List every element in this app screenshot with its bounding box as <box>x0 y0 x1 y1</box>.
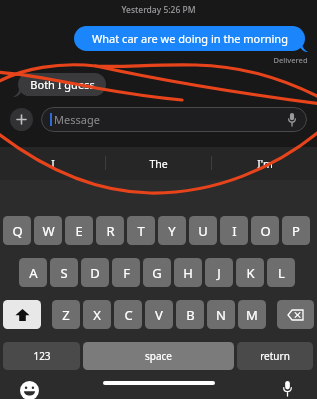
staticText: I <box>232 222 237 240</box>
staticText: Yesterday 5:26 PM <box>121 4 196 16</box>
staticText: I'm <box>257 157 273 171</box>
button[interactable]: V <box>145 300 173 329</box>
staticText: N <box>216 306 226 324</box>
button[interactable]: H <box>174 258 202 287</box>
button[interactable]: Emoji <box>19 380 40 399</box>
staticText: S <box>60 264 68 282</box>
staticText: The <box>149 157 168 171</box>
staticText: T <box>137 222 145 240</box>
button[interactable]: O <box>251 216 279 245</box>
button[interactable]: G <box>143 258 171 287</box>
staticText: Message <box>54 112 100 127</box>
button[interactable]: D <box>81 258 109 287</box>
button[interactable]: M <box>238 300 266 329</box>
button[interactable]: R <box>96 216 124 245</box>
staticText: 123 <box>33 349 51 363</box>
button[interactable]: What car are we doing in the morning <box>74 26 305 51</box>
staticText: L <box>278 264 285 282</box>
button[interactable]: Dictation <box>277 378 298 399</box>
button[interactable]: Q <box>3 216 31 245</box>
staticText: K <box>246 264 255 282</box>
button[interactable]: return <box>237 342 313 370</box>
staticText: B <box>186 306 195 324</box>
staticText: R <box>106 222 115 240</box>
button[interactable]: I <box>220 216 248 245</box>
button[interactable]: J <box>205 258 233 287</box>
button[interactable]: I <box>0 147 105 180</box>
staticText: X <box>93 306 101 324</box>
staticText: E <box>75 222 83 240</box>
staticText: D <box>90 264 100 282</box>
button[interactable]: Z <box>52 300 80 329</box>
staticText: C <box>124 306 133 324</box>
staticText: Z <box>62 306 70 324</box>
button[interactable]: B <box>176 300 204 329</box>
button[interactable]: Y <box>158 216 186 245</box>
staticText: U <box>198 222 208 240</box>
staticText: H <box>183 264 193 282</box>
button[interactable]: L <box>267 258 295 287</box>
button[interactable]: I'm <box>212 147 317 180</box>
staticText: P <box>292 222 300 240</box>
button[interactable]: Both I guess <box>18 73 106 96</box>
button[interactable]: C <box>114 300 142 329</box>
button[interactable]: U <box>189 216 217 245</box>
staticText: A <box>29 264 38 282</box>
button[interactable]: S <box>50 258 78 287</box>
staticText: G <box>152 264 162 282</box>
staticText: J <box>217 264 221 282</box>
button[interactable]: Dictate <box>283 111 300 128</box>
button[interactable]: N <box>207 300 235 329</box>
button[interactable]: E <box>65 216 93 245</box>
staticText: F <box>123 264 130 282</box>
button[interactable]: P <box>282 216 310 245</box>
button[interactable]: F <box>112 258 140 287</box>
staticText: V <box>155 306 163 324</box>
button[interactable]: Add attachment <box>10 108 33 131</box>
button[interactable]: space <box>83 342 234 370</box>
button[interactable]: 123 <box>3 342 80 370</box>
button[interactable]: Backspace <box>277 300 314 329</box>
button[interactable]: Shift <box>3 300 41 329</box>
button[interactable]: Message <box>41 107 307 132</box>
staticText: Both I guess <box>30 77 95 92</box>
button[interactable]: A <box>19 258 47 287</box>
staticText: Delivered <box>273 55 308 65</box>
button[interactable]: W <box>34 216 62 245</box>
button[interactable]: The <box>106 147 211 180</box>
staticText: O <box>260 222 271 240</box>
button[interactable]: T <box>127 216 155 245</box>
button[interactable]: X <box>83 300 111 329</box>
staticText: W <box>42 222 55 240</box>
staticText: I <box>51 157 55 171</box>
staticText: Q <box>12 222 23 240</box>
staticText: What car are we doing in the morning <box>92 31 288 46</box>
staticText: Y <box>168 222 176 240</box>
button[interactable]: K <box>236 258 264 287</box>
staticText: M <box>246 306 258 324</box>
staticText: return <box>260 349 290 363</box>
staticText: space <box>145 349 172 363</box>
